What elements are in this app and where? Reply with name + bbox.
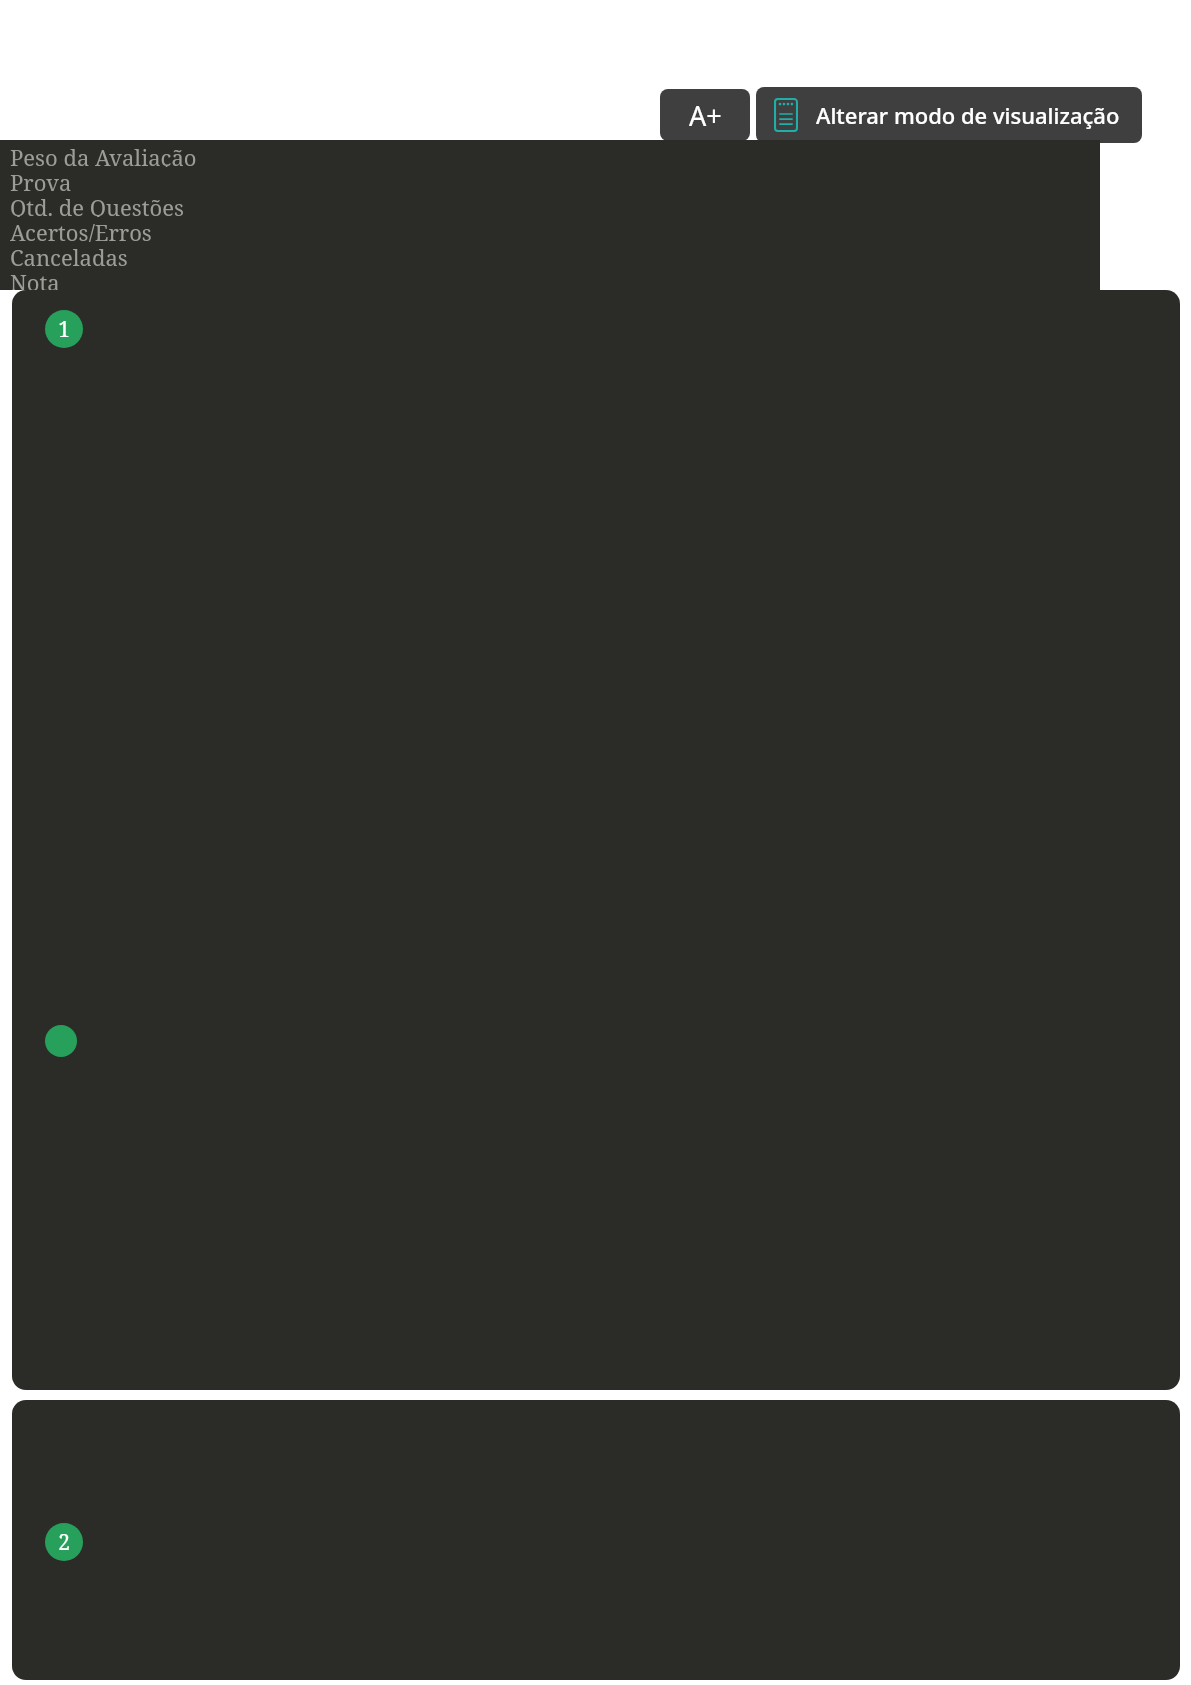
staticText: A+ — [689, 97, 722, 134]
staticText: Nota — [10, 267, 60, 290]
staticText: 1 — [58, 315, 70, 344]
staticText: Alterar modo de visualização — [816, 100, 1120, 130]
button[interactable]: Qtd. de Questões — [10, 192, 1100, 217]
button[interactable]: 1 — [12, 290, 1180, 1390]
button[interactable]: A+ — [660, 89, 750, 141]
staticText: 2 — [58, 1528, 70, 1557]
button[interactable]: Nota — [10, 267, 1100, 290]
staticText: Canceladas — [10, 242, 128, 267]
button[interactable]: Canceladas — [10, 242, 1100, 267]
staticText: Prova — [10, 167, 72, 192]
staticText: Acertos/Erros — [10, 217, 152, 242]
other: Modo de visualização — [774, 98, 798, 132]
button[interactable]: Prova — [10, 167, 1100, 192]
staticText: Qtd. de Questões — [10, 192, 184, 217]
button[interactable]: Acertos/Erros — [10, 217, 1100, 242]
button[interactable]: Modo de visualização — [756, 87, 1142, 143]
button[interactable]: Peso da Avaliação — [10, 142, 1100, 167]
staticText: Peso da Avaliação — [10, 142, 197, 167]
button[interactable]: 2 — [12, 1400, 1180, 1680]
